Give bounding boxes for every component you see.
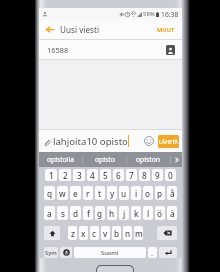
staticText: d (73, 208, 79, 219)
button[interactable]: 3 (73, 169, 85, 181)
button[interactable]: m (134, 226, 143, 240)
button[interactable]: v (101, 226, 110, 240)
staticText: x (81, 228, 86, 239)
button[interactable]: j (119, 206, 129, 220)
button[interactable]: Enter (159, 247, 177, 258)
button[interactable]: 5 (100, 169, 111, 181)
button[interactable]: Sym (44, 247, 58, 258)
button[interactable]: y (107, 186, 117, 200)
staticText: 7 (129, 170, 134, 181)
button[interactable]: Suomi (74, 247, 146, 258)
button[interactable]: 7 (126, 169, 137, 181)
staticText: . (151, 248, 154, 258)
button[interactable]: 4 (87, 169, 98, 181)
staticText: LÄHETÄ (159, 138, 178, 145)
staticText: 3 (77, 170, 82, 181)
button[interactable]: l (143, 206, 153, 220)
staticText: 5 (103, 170, 108, 181)
button[interactable]: k (131, 206, 141, 220)
staticText: 0 (168, 170, 173, 181)
button[interactable]: Shift (44, 226, 60, 240)
button[interactable]: h (107, 206, 117, 220)
button[interactable]: o (143, 186, 153, 200)
staticText: 8 (142, 170, 147, 181)
button[interactable]: Contacts (166, 45, 175, 55)
staticText: t (98, 188, 102, 199)
button[interactable]: opistolla (39, 152, 82, 167)
staticText: c (92, 228, 97, 239)
button[interactable]: 0 (165, 169, 176, 181)
button[interactable]: z (68, 226, 77, 240)
button[interactable]: b (112, 226, 121, 240)
staticText: b (114, 228, 120, 239)
button[interactable]: a (44, 206, 55, 220)
button[interactable]: ä (167, 206, 177, 220)
button[interactable]: r (83, 186, 93, 200)
staticText: e (73, 188, 78, 199)
button[interactable]: e (70, 186, 81, 200)
staticText: q (47, 188, 53, 199)
button[interactable]: q (44, 186, 55, 200)
staticText: z (71, 228, 75, 239)
staticText: l (147, 208, 150, 219)
staticText: lahjoita10 opisto (53, 135, 128, 148)
staticText: w (59, 188, 66, 199)
staticText: g (97, 208, 103, 219)
staticText: s (61, 208, 65, 219)
staticText: 16588 (47, 45, 69, 55)
button[interactable]: More suggestions (171, 152, 182, 167)
button[interactable]: 8 (139, 169, 150, 181)
button[interactable]: i (131, 186, 141, 200)
button[interactable]: Voice input (60, 247, 72, 258)
button[interactable]: ö (155, 206, 165, 220)
button[interactable]: MUUT (151, 20, 182, 39)
button[interactable]: 6 (113, 169, 124, 181)
button[interactable]: p (155, 186, 165, 200)
button[interactable]: . (148, 247, 157, 258)
staticText: opistolla (47, 155, 75, 164)
button[interactable]: LÄHETÄ (158, 135, 179, 148)
staticText: m (135, 228, 143, 239)
button[interactable]: 1 (45, 169, 57, 181)
staticText: å (170, 188, 175, 199)
staticText: 1 (49, 170, 54, 181)
staticText: u (121, 188, 127, 199)
staticText: o (145, 188, 151, 199)
staticText: 6 (116, 170, 121, 181)
staticText: Sym (45, 249, 57, 257)
staticText: ä (170, 208, 175, 219)
button[interactable]: d (70, 206, 81, 220)
button[interactable]: 2 (59, 169, 71, 181)
staticText: a (47, 208, 52, 219)
button[interactable]: f (83, 206, 93, 220)
staticText: p (157, 188, 163, 199)
button[interactable]: Backspace (157, 226, 177, 240)
staticText: 16:38 (161, 10, 179, 19)
button[interactable]: n (123, 226, 132, 240)
staticText: i (135, 188, 138, 199)
button[interactable]: opiston (127, 152, 170, 167)
button[interactable]: Emoji (143, 135, 155, 147)
staticText: Uusi viesti (60, 24, 100, 35)
button[interactable]: 9 (152, 169, 163, 181)
staticText: k (134, 208, 139, 219)
staticText: 2 (63, 170, 68, 181)
button[interactable]: c (90, 226, 99, 240)
staticText: ö (157, 208, 163, 219)
staticText: opisto (95, 155, 115, 164)
staticText: f (87, 208, 90, 219)
button[interactable]: t (95, 186, 105, 200)
button[interactable]: opisto (83, 152, 126, 167)
button[interactable]: å (167, 186, 177, 200)
button[interactable]: s (57, 206, 68, 220)
button[interactable]: x (79, 226, 88, 240)
staticText: r (86, 188, 90, 199)
button[interactable]: w (57, 186, 68, 200)
button[interactable]: u (119, 186, 129, 200)
staticText: y (110, 188, 115, 199)
staticText: 9 (155, 170, 160, 181)
staticText: n (125, 228, 131, 239)
button[interactable]: g (95, 206, 105, 220)
button[interactable]: Attach (41, 136, 52, 147)
button[interactable]: Back (39, 20, 60, 39)
